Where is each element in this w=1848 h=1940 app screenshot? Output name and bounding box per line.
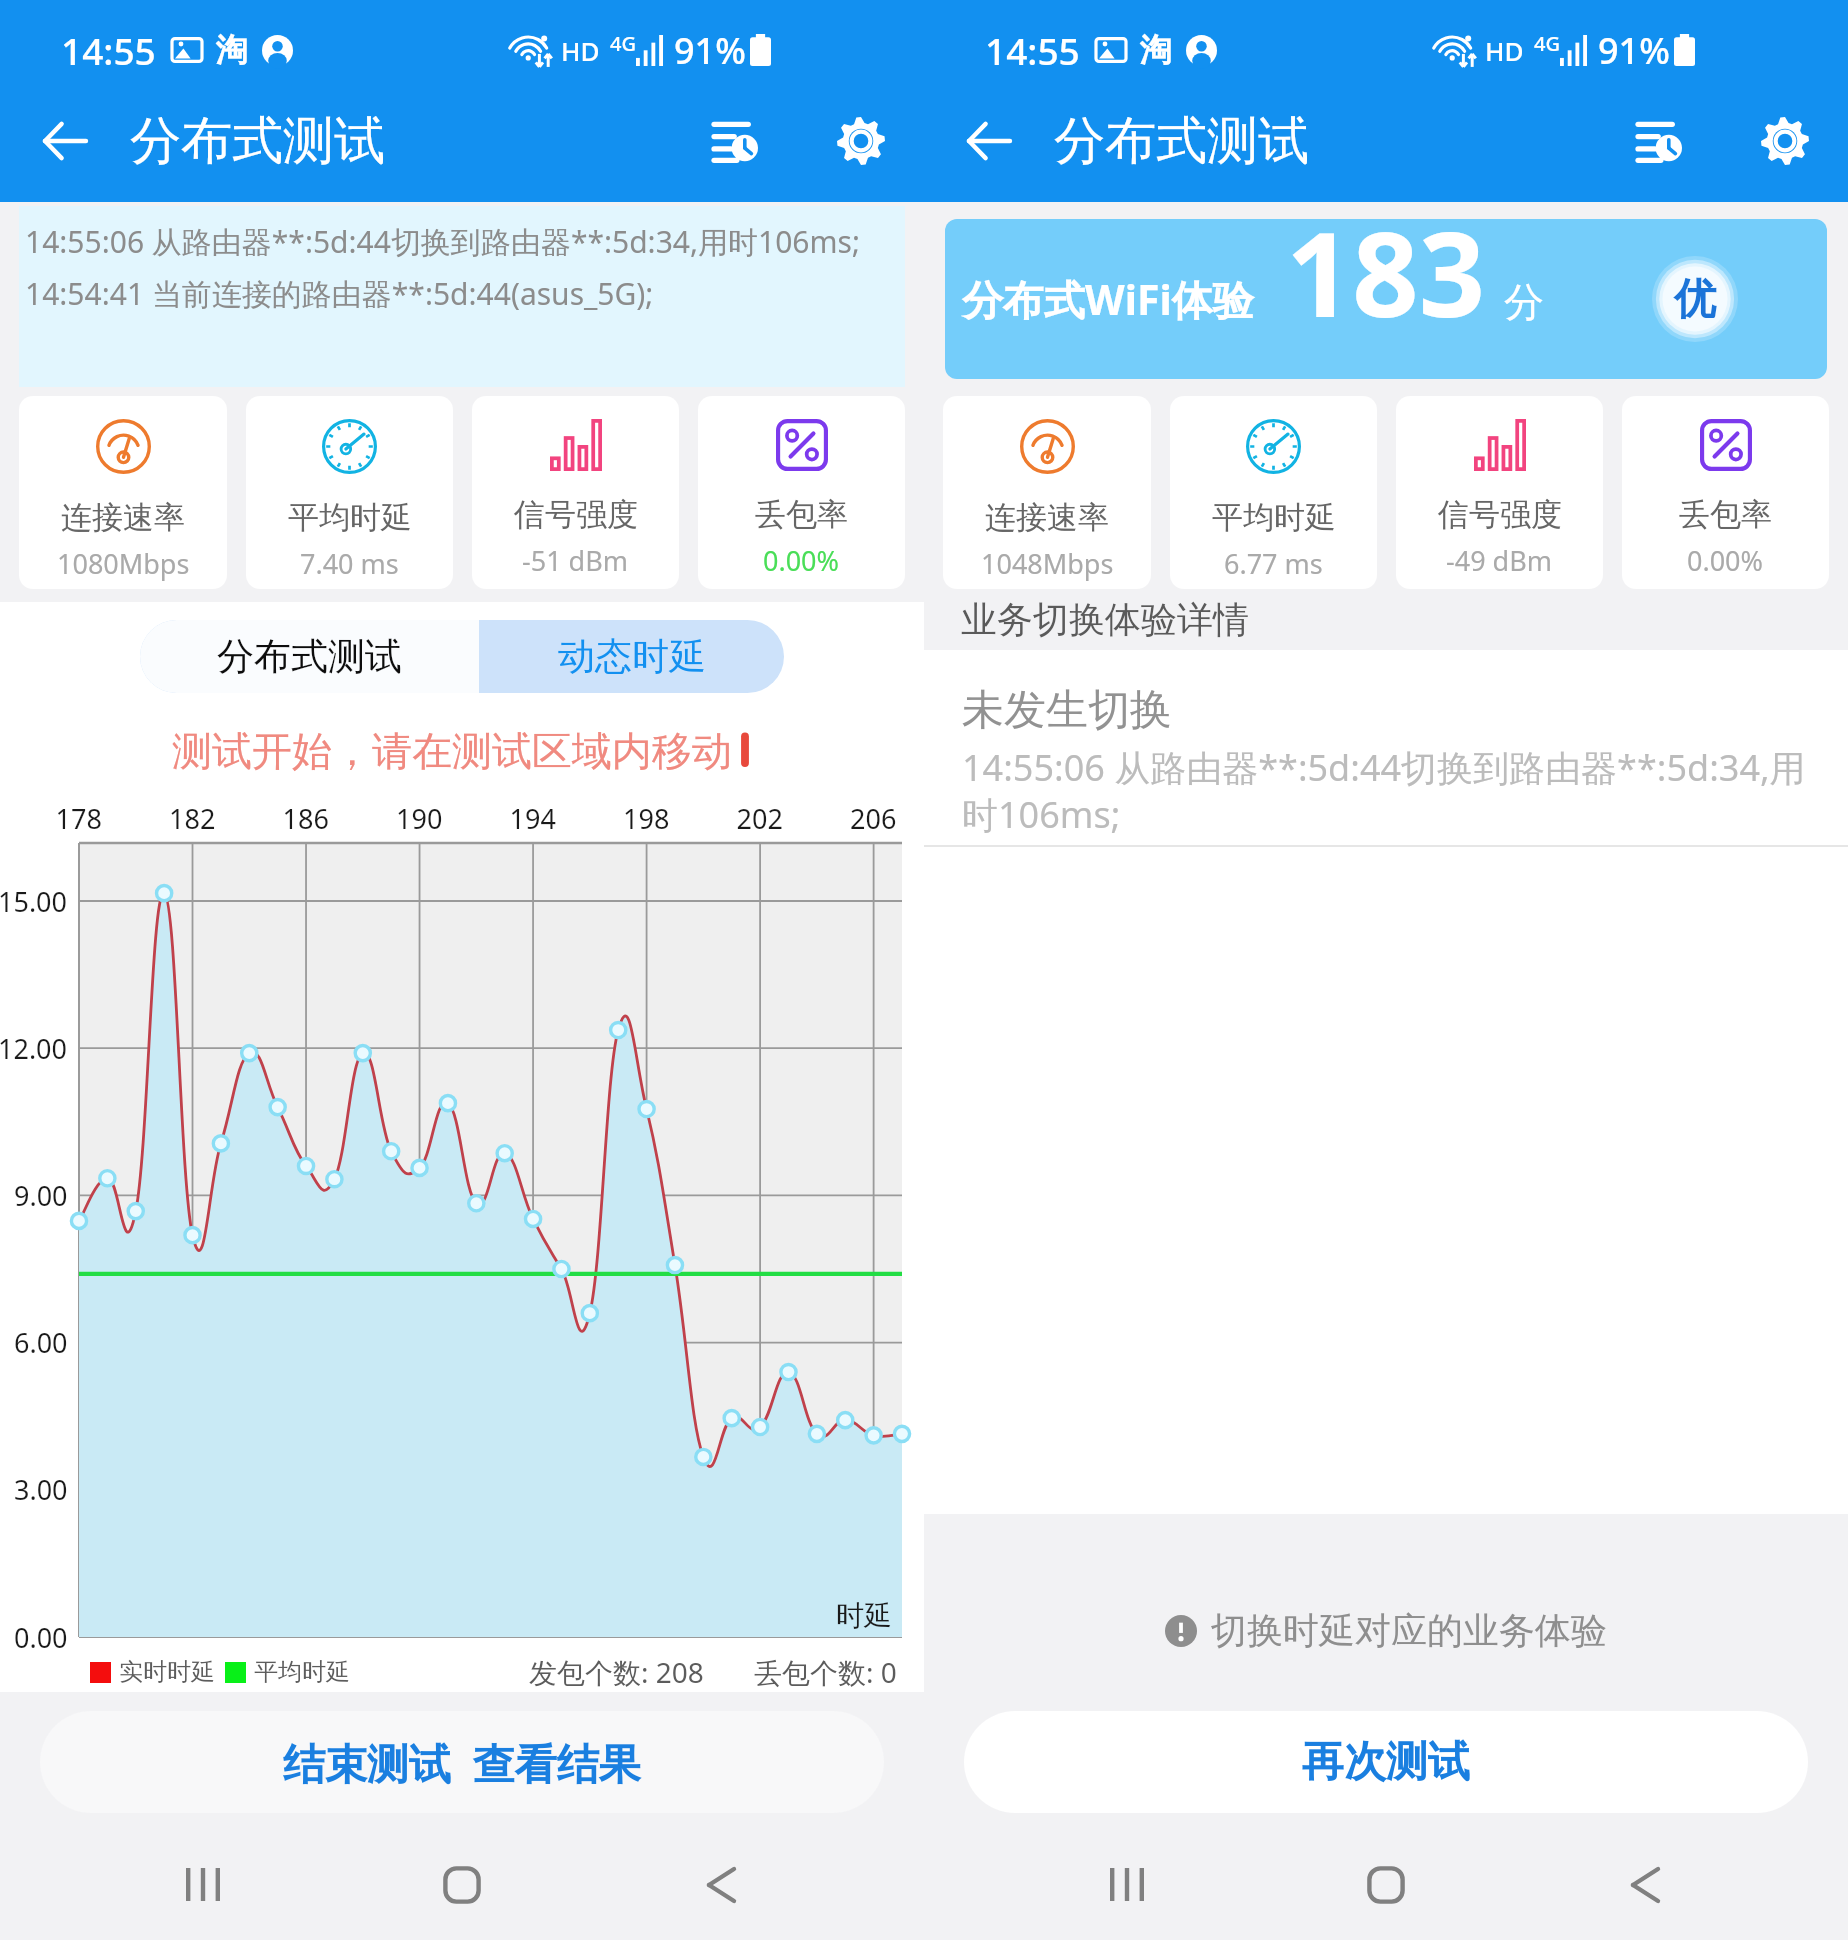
button[interactable]: 连接速率 [943, 396, 1151, 589]
staticText: 6.77 ms [1224, 545, 1323, 582]
button[interactable]: Back [924, 80, 1054, 202]
button[interactable]: 连接速率 [19, 396, 227, 589]
staticText: 未发生切换 [962, 684, 1172, 737]
button[interactable]: Home [1256, 1829, 1515, 1940]
staticText: 分布式测试 [130, 109, 385, 173]
staticText: 平均时延 [1212, 498, 1336, 537]
button[interactable]: 结束测试 查看结果 [40, 1711, 884, 1813]
button[interactable]: 未发生切换 [924, 684, 1848, 839]
staticText: HD [561, 33, 600, 68]
staticText: 结束测试 查看结果 [283, 1734, 641, 1791]
button[interactable]: Recents [74, 1829, 332, 1940]
staticText: 分 [1504, 277, 1544, 327]
staticText: 发包个数: 208 [529, 1653, 704, 1691]
staticText: 再次测试 [1302, 1736, 1470, 1789]
button[interactable]: 平均时延 [1170, 396, 1377, 589]
staticText: 14:54:41 当前连接的路由器**:5d:44(asus_5G); [25, 273, 654, 314]
staticText: 信号强度 [1438, 495, 1562, 534]
staticText: 14:55 [61, 25, 156, 75]
staticText: 0.00% [1687, 542, 1764, 579]
button[interactable]: 14:55:06 从路由器**:5d:44切换到路由器**:5d:34,用时10… [19, 206, 905, 387]
staticText: 测试开始，请在测试区域内移动 [172, 726, 732, 776]
button[interactable]: 平均时延 [246, 396, 453, 589]
button[interactable]: Settings [798, 80, 924, 202]
staticText: 丢包个数: 0 [754, 1653, 897, 1691]
button[interactable]: 再次测试 [964, 1711, 1808, 1813]
staticText: 丢包率 [755, 495, 848, 534]
staticText: 实时时延 [119, 1657, 215, 1687]
staticText: 丢包率 [1679, 495, 1772, 534]
button[interactable]: History [1598, 80, 1722, 202]
staticText: -49 dBm [1446, 542, 1553, 579]
button[interactable]: 丢包率 [1622, 396, 1829, 589]
button[interactable]: 动态时延 [479, 620, 784, 693]
staticText: 连接速率 [985, 498, 1109, 537]
staticText: 切换时延对应的业务体验 [1211, 1608, 1607, 1653]
button[interactable]: Recents [998, 1829, 1256, 1940]
staticText: 7.40 ms [300, 545, 399, 582]
staticText: 优 [1674, 273, 1716, 326]
staticText: 91% [1598, 26, 1670, 75]
staticText: 淘 [216, 30, 248, 70]
button[interactable]: Back [591, 1829, 850, 1940]
staticText: 分布式测试 [217, 633, 402, 680]
staticText: 连接速率 [61, 498, 185, 537]
button[interactable]: 分布式WiFi体验 [945, 219, 1827, 379]
button[interactable]: Home [332, 1829, 591, 1940]
button[interactable]: 分布式测试 [140, 620, 479, 693]
staticText: 动态时延 [558, 633, 706, 680]
staticText: 平均时延 [288, 498, 412, 537]
staticText: 分布式测试 [1054, 109, 1309, 173]
button[interactable]: Back [1515, 1829, 1774, 1940]
staticText: 183 [1286, 219, 1486, 351]
staticText: -51 dBm [522, 542, 629, 579]
staticText: 4G [1534, 30, 1560, 57]
staticText: 91% [674, 26, 746, 75]
staticText: HD [1485, 33, 1524, 68]
button[interactable]: Back [0, 80, 130, 202]
staticText: 4G [610, 30, 636, 57]
staticText: 业务切换体验详情 [961, 597, 1249, 642]
staticText: 14:55:06 从路由器**:5d:44切换到路由器**:5d:34,用时10… [25, 221, 860, 262]
staticText: 1080Mbps [57, 545, 190, 582]
staticText: 0.00% [763, 542, 840, 579]
staticText: 14:55 [985, 25, 1080, 75]
button[interactable]: Settings [1722, 80, 1848, 202]
staticText: 1048Mbps [981, 545, 1114, 582]
button[interactable]: History [674, 80, 798, 202]
staticText: 14:55:06 从路由器**:5d:44切换到路由器**:5d:34,用时10… [962, 743, 1824, 839]
staticText: 信号强度 [514, 495, 638, 534]
staticText: 平均时延 [254, 1657, 350, 1687]
staticText: 淘 [1140, 30, 1172, 70]
button[interactable]: 丢包率 [698, 396, 905, 589]
button[interactable]: 信号强度 [1396, 396, 1603, 589]
button[interactable]: 信号强度 [472, 396, 679, 589]
staticText: 分布式WiFi体验 [962, 271, 1254, 327]
